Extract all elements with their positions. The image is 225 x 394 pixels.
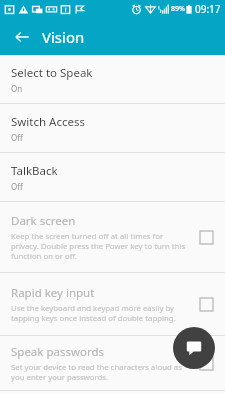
staticText: Use the keyboard and keypad more easily … <box>11 303 189 323</box>
button[interactable]: Switch Access <box>0 104 225 152</box>
button[interactable]: Select to Speak <box>0 55 225 103</box>
staticText: Off <box>11 181 23 192</box>
button[interactable]: Speak passwords checkbox <box>195 352 217 374</box>
button[interactable]: Dark screen checkbox <box>195 226 217 248</box>
staticText: Switch Access <box>11 114 85 130</box>
button[interactable]: Speak passwords <box>0 336 225 390</box>
button[interactable]: Messages <box>173 327 215 369</box>
button[interactable]: Rapid key input <box>0 273 225 335</box>
staticText: Keep the screen turned off at all times … <box>11 231 189 261</box>
staticText: TalkBack <box>11 163 58 179</box>
staticText: Off <box>11 132 23 143</box>
button[interactable]: Back <box>8 23 36 51</box>
staticText: Select to Speak <box>11 65 93 81</box>
button[interactable]: Dark screen <box>0 202 225 272</box>
button[interactable]: Rapid key input checkbox <box>195 293 217 315</box>
staticText: Rapid key input <box>11 285 95 301</box>
staticText: Dark screen <box>11 213 76 229</box>
staticText: 89% <box>171 4 185 14</box>
staticText: Set your device to read the characters a… <box>11 362 189 382</box>
staticText: Speak passwords <box>11 344 105 360</box>
staticText: Vision <box>42 27 85 47</box>
staticText: On <box>11 83 23 94</box>
button[interactable]: TalkBack <box>0 153 225 201</box>
staticText: 09:17 <box>195 2 221 16</box>
